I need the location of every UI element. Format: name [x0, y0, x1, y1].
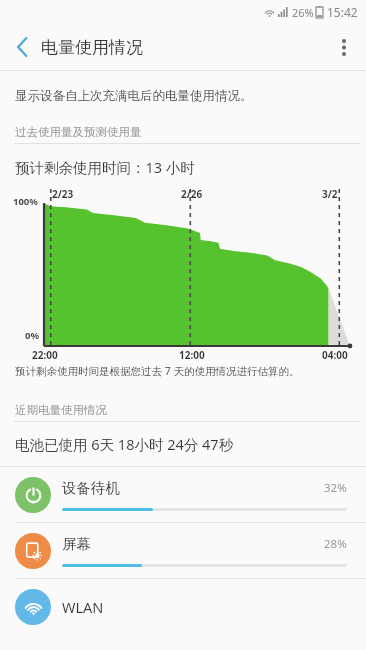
staticText: 2/23: [52, 187, 74, 201]
staticText: 设备待机: [62, 479, 324, 497]
staticText: 屏幕: [62, 535, 324, 553]
staticText: WLAN: [62, 597, 347, 617]
button[interactable]: More options: [322, 25, 366, 69]
staticText: 3/2: [322, 187, 338, 201]
staticText: 15:42: [327, 4, 358, 20]
staticText: 12:00: [179, 348, 205, 362]
staticText: 电量使用情况: [41, 37, 143, 58]
staticText: 2/26: [181, 187, 203, 201]
staticText: 电池已使用 6天 18小时 24分 47秒: [15, 434, 234, 454]
staticText: 22:00: [32, 348, 58, 362]
staticText: 近期电量使用情况: [15, 403, 107, 417]
staticText: 32%: [324, 480, 347, 496]
button[interactable]: 设备待机: [0, 467, 366, 522]
staticText: 显示设备自上次充满电后的电量使用情况。: [15, 88, 253, 104]
button[interactable]: 电池已使用 6天 18小时 24分 47秒: [0, 422, 366, 466]
staticText: 预计剩余使用时间是根据您过去 7 天的使用情况进行估算的。: [15, 364, 300, 378]
staticText: 100%: [13, 195, 38, 208]
staticText: 28%: [324, 536, 347, 552]
staticText: 26%: [292, 5, 314, 20]
staticText: 预计剩余使用时间：13 小时: [15, 157, 195, 177]
button[interactable]: 屏幕: [0, 523, 366, 578]
staticText: 0%: [25, 329, 40, 342]
button[interactable]: WLAN: [0, 579, 366, 634]
staticText: 过去使用量及预测使用量: [15, 125, 142, 139]
staticText: 04:00: [322, 348, 348, 362]
button[interactable]: Back: [0, 25, 44, 69]
